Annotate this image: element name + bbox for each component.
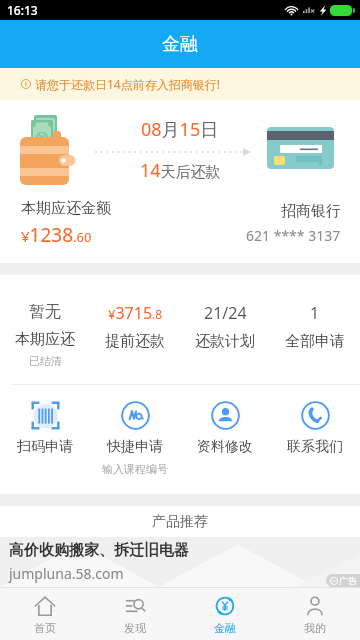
- staticText: 金融: [162, 33, 198, 56]
- staticText: 产品推荐: [152, 513, 208, 531]
- button[interactable]: 高价收购搬家、拆迁旧电器: [0, 537, 360, 587]
- button[interactable]: 联系我们: [270, 385, 360, 494]
- button[interactable]: 请您于还款日14点前存入招商银行!: [0, 68, 360, 100]
- button[interactable]: 1: [270, 275, 360, 384]
- staticText: 招商银行: [281, 202, 341, 221]
- staticText: 还款计划: [195, 332, 255, 351]
- staticText: ¥1238.60: [21, 222, 92, 248]
- staticText: 14天后还款: [140, 158, 221, 183]
- button[interactable]: 首页: [0, 588, 90, 640]
- button[interactable]: 金融: [180, 588, 270, 640]
- staticText: 请您于还款日14点前存入招商银行!: [35, 76, 220, 92]
- staticText: 全部申请: [285, 332, 345, 351]
- staticText: 提前还款: [105, 332, 165, 351]
- staticText: 快捷申请: [107, 438, 163, 456]
- staticText: 高价收购搬家、拆迁旧电器: [9, 541, 189, 560]
- staticText: 我的: [304, 621, 326, 635]
- staticText: 本期应还: [15, 330, 75, 349]
- staticText: 扫码申请: [17, 438, 73, 456]
- staticText: 金融: [214, 621, 236, 635]
- button[interactable]: 资料修改: [180, 385, 270, 494]
- staticText: 1: [310, 302, 320, 324]
- staticText: 输入课程编号: [102, 462, 168, 476]
- button[interactable]: 发现: [90, 588, 180, 640]
- staticText: 联系我们: [287, 438, 343, 456]
- staticText: 资料修改: [197, 438, 253, 456]
- staticText: jumpluna.58.com: [9, 564, 124, 583]
- staticText: 16:13: [7, 2, 38, 18]
- staticText: 621 **** 3137: [246, 226, 341, 245]
- button[interactable]: 暂无: [0, 275, 90, 384]
- staticText: 首页: [34, 621, 56, 635]
- staticText: 本期应还金额: [21, 199, 111, 218]
- staticText: 21/24: [204, 302, 247, 324]
- button[interactable]: 扫码申请: [0, 385, 90, 494]
- staticText: 广告: [339, 575, 357, 586]
- staticText: 已结清: [29, 354, 62, 368]
- button[interactable]: 我的: [270, 588, 360, 640]
- button[interactable]: 快捷申请: [90, 385, 180, 494]
- staticText: ¥3715.8: [108, 302, 163, 324]
- staticText: 发现: [124, 621, 146, 635]
- button[interactable]: ¥3715.8: [90, 275, 180, 384]
- staticText: 08月15日: [141, 117, 219, 142]
- staticText: 暂无: [29, 302, 61, 322]
- button[interactable]: 21/24: [180, 275, 270, 384]
